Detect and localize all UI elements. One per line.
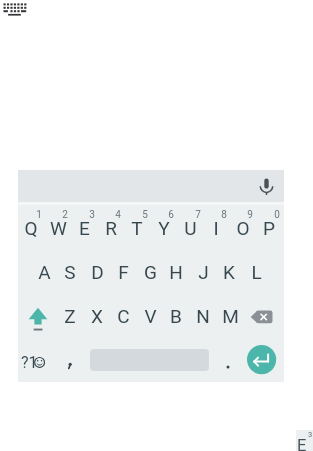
button[interactable]: K: [216, 251, 242, 293]
staticText: 3: [89, 209, 95, 221]
button[interactable]: C: [110, 295, 136, 337]
staticText: E: [297, 436, 307, 451]
staticText: Q: [24, 217, 38, 239]
staticText: 9: [247, 209, 253, 221]
button[interactable]: 3: [296, 430, 313, 451]
staticText: X: [91, 305, 103, 327]
button[interactable]: [2, 2, 28, 17]
button[interactable]: Z: [57, 295, 83, 337]
button[interactable]: L: [243, 251, 269, 293]
button[interactable]: P: [256, 207, 282, 249]
staticText: 6: [168, 209, 174, 221]
staticText: 1: [36, 209, 42, 221]
staticText: M: [222, 305, 239, 327]
button[interactable]: J: [190, 251, 216, 293]
button[interactable]: M: [217, 295, 243, 337]
staticText: G: [144, 261, 157, 283]
button[interactable]: Q: [18, 207, 44, 249]
staticText: A: [38, 261, 51, 283]
button[interactable]: G: [137, 251, 163, 293]
staticText: ?1: [21, 353, 38, 372]
staticText: R: [105, 217, 117, 239]
button[interactable]: W: [45, 207, 71, 249]
staticText: U: [184, 217, 197, 239]
button[interactable]: [253, 170, 280, 195]
staticText: W: [50, 217, 67, 239]
staticText: S: [64, 261, 76, 283]
button[interactable]: [58, 344, 82, 378]
staticText: 0: [274, 209, 280, 221]
staticText: 2: [62, 209, 68, 221]
button[interactable]: [247, 345, 276, 374]
staticText: Y: [158, 217, 170, 239]
button[interactable]: R: [98, 207, 124, 249]
staticText: H: [169, 261, 183, 283]
button[interactable]: H: [163, 251, 189, 293]
staticText: 3: [308, 430, 313, 439]
staticText: E: [79, 217, 90, 239]
button[interactable]: B: [163, 295, 189, 337]
staticText: T: [131, 217, 143, 239]
button[interactable]: I: [203, 207, 229, 249]
staticText: C: [117, 305, 130, 327]
staticText: B: [170, 305, 182, 327]
button[interactable]: [18, 170, 284, 202]
staticText: J: [198, 261, 209, 283]
button[interactable]: N: [190, 295, 216, 337]
button[interactable]: [247, 300, 277, 332]
staticText: F: [118, 261, 129, 283]
staticText: 8: [221, 209, 227, 221]
button[interactable]: A: [31, 251, 57, 293]
button[interactable]: [216, 344, 240, 378]
button[interactable]: U: [177, 207, 203, 249]
staticText: 4: [115, 209, 121, 221]
staticText: K: [223, 261, 235, 283]
button[interactable]: O: [230, 207, 256, 249]
staticText: V: [144, 305, 157, 327]
staticText: D: [91, 261, 104, 283]
button[interactable]: ?1: [16, 344, 52, 378]
staticText: 7: [195, 209, 201, 221]
button[interactable]: T: [124, 207, 150, 249]
button[interactable]: [24, 301, 52, 333]
button[interactable]: Y: [151, 207, 177, 249]
staticText: 5: [142, 209, 148, 221]
button[interactable]: X: [84, 295, 110, 337]
staticText: O: [236, 217, 250, 239]
staticText: I: [213, 217, 219, 239]
button[interactable]: F: [110, 251, 136, 293]
button[interactable]: S: [57, 251, 83, 293]
staticText: N: [196, 305, 210, 327]
staticText: Z: [64, 305, 76, 327]
staticText: L: [251, 261, 262, 283]
staticText: P: [263, 217, 275, 239]
button[interactable]: E: [71, 207, 97, 249]
button[interactable]: D: [84, 251, 110, 293]
button[interactable]: V: [137, 295, 163, 337]
